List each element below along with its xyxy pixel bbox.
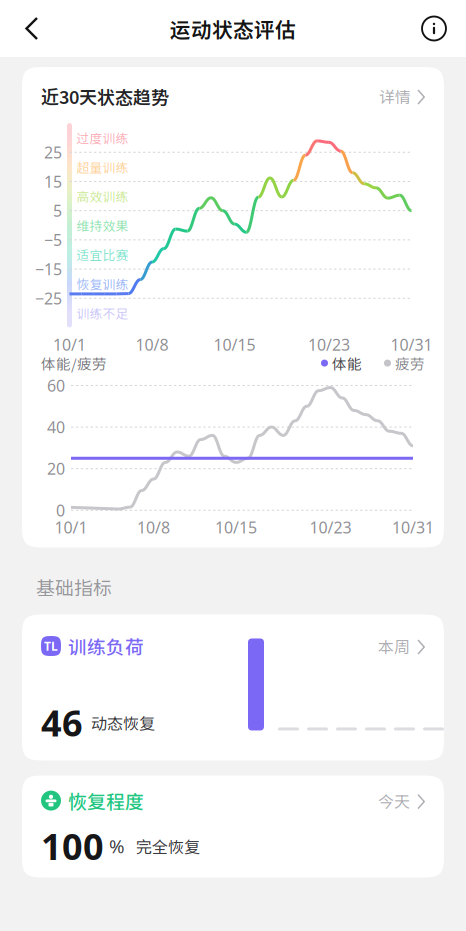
staticText: TL — [44, 638, 58, 654]
staticText: 10/8 — [137, 517, 170, 538]
staticText: 25 — [44, 142, 62, 163]
button[interactable]: TL — [0, 614, 466, 760]
staticText: 0 — [56, 500, 65, 521]
staticText: 训练负荷 — [68, 632, 144, 659]
staticText: 训练不足 — [76, 304, 128, 322]
staticText: −25 — [35, 288, 62, 309]
staticText: 10/31 — [390, 334, 432, 355]
staticText: 维持效果 — [76, 216, 128, 234]
staticText: 10/8 — [136, 334, 169, 355]
staticText: 适宜比赛 — [76, 245, 128, 264]
button[interactable]: 详情 — [379, 84, 425, 108]
staticText: 10/23 — [309, 517, 351, 538]
staticText: 超量训练 — [76, 158, 128, 176]
staticText: 近30天状态趋势 — [41, 83, 169, 109]
staticText: 100 — [41, 822, 104, 870]
staticText: 过度训练 — [76, 128, 128, 147]
staticText: 详情 — [379, 84, 411, 108]
button[interactable]: 说明 — [410, 3, 458, 53]
staticText: 40 — [47, 416, 65, 438]
staticText: 20 — [47, 458, 65, 479]
staticText: 5 — [53, 200, 62, 221]
staticText: 疲劳 — [395, 352, 425, 374]
staticText: 高效训练 — [76, 187, 128, 205]
button[interactable]: 返回 — [8, 3, 56, 53]
button[interactable]: 恢复程度 — [0, 760, 466, 877]
staticText: 基础指标 — [36, 573, 112, 600]
staticText: 完全恢复 — [136, 834, 200, 858]
staticText: 10/31 — [392, 517, 434, 538]
staticText: 10/15 — [215, 517, 257, 538]
staticText: 本周 — [378, 634, 410, 658]
staticText: −15 — [35, 258, 62, 280]
staticText: 15 — [44, 171, 62, 192]
staticText: 10/1 — [53, 334, 86, 355]
staticText: 体能/疲劳 — [41, 352, 107, 374]
staticText: 动态恢复 — [91, 711, 155, 734]
staticText: 10/23 — [308, 334, 350, 355]
staticText: −5 — [44, 229, 62, 250]
staticText: 10/1 — [54, 517, 87, 538]
staticText: 恢复训练 — [76, 274, 128, 293]
staticText: 46 — [41, 699, 83, 746]
staticText: 60 — [47, 375, 65, 396]
staticText: 体能 — [332, 352, 362, 374]
staticText: 今天 — [378, 789, 410, 812]
staticText: 恢复程度 — [68, 787, 144, 814]
staticText: 运动状态评估 — [170, 13, 296, 43]
staticText: 10/15 — [214, 334, 256, 355]
staticText: % — [109, 834, 125, 858]
